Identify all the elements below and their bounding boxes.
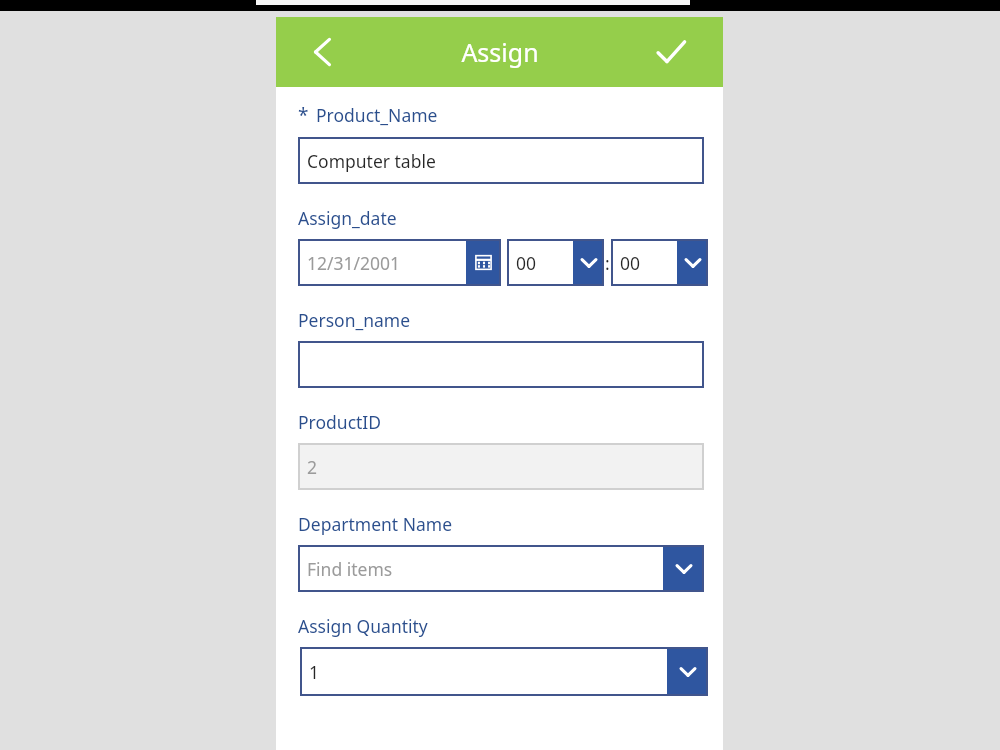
- staticText: :: [605, 251, 610, 275]
- button[interactable]: [298, 341, 704, 388]
- button[interactable]: Department Name: [298, 545, 704, 592]
- staticText: Assign_date: [298, 206, 397, 230]
- staticText: Assign: [461, 35, 539, 69]
- staticText: ProductID: [298, 410, 382, 434]
- button[interactable]: Computer table: [298, 137, 704, 184]
- button[interactable]: Confirm: [649, 30, 693, 74]
- staticText: 00: [516, 251, 537, 275]
- staticText: Find items: [307, 557, 393, 581]
- button[interactable]: Pick date: [298, 239, 501, 286]
- staticText: 00: [620, 251, 641, 275]
- button[interactable]: 2: [298, 443, 704, 490]
- staticText: 12/31/2001: [307, 251, 401, 275]
- button[interactable]: Hour: [507, 239, 604, 286]
- staticText: Person_name: [298, 308, 411, 332]
- staticText: Computer table: [307, 149, 436, 173]
- button[interactable]: Back: [302, 30, 346, 74]
- staticText: 1: [309, 660, 320, 684]
- button[interactable]: Minute: [611, 239, 708, 286]
- staticText: Product_Name: [316, 103, 438, 127]
- staticText: *: [298, 102, 309, 128]
- button[interactable]: Assign Quantity: [300, 647, 708, 696]
- staticText: Department Name: [298, 512, 453, 536]
- staticText: 2: [307, 455, 318, 479]
- staticText: Assign Quantity: [298, 614, 428, 638]
